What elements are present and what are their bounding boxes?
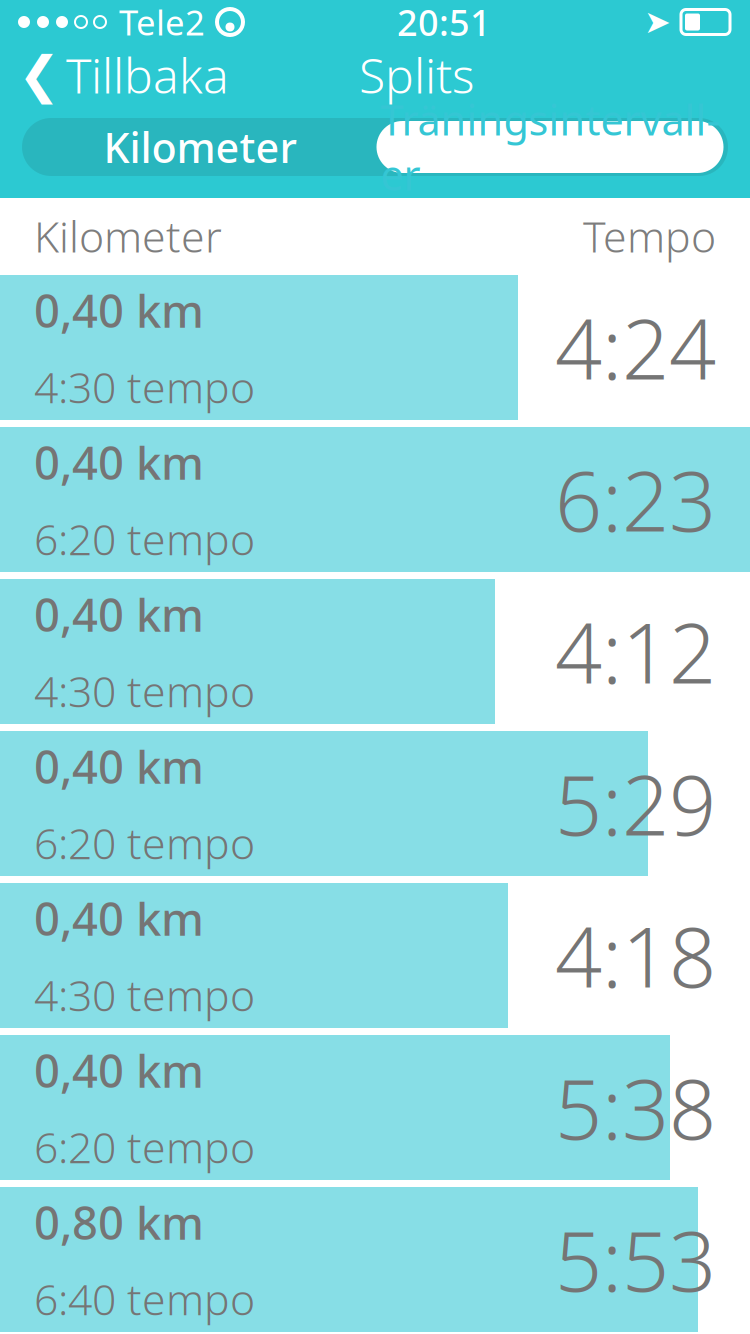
staticText: 20:51 [397, 0, 491, 46]
staticText: 0,40 km [34, 1040, 204, 1100]
staticText: 4:24 [555, 293, 716, 402]
staticText: 4:12 [555, 597, 716, 706]
button[interactable]: Träningsintervaller [376, 121, 726, 173]
staticText: 4:30 tempo [34, 358, 255, 415]
staticText: 6:40 tempo [34, 1270, 255, 1327]
staticText: 0,40 km [34, 888, 204, 948]
staticText: 6:20 tempo [34, 510, 255, 567]
staticText: 0,80 km [34, 1192, 204, 1252]
staticText: 5:53 [555, 1205, 716, 1314]
staticText: Tele2 [119, 0, 205, 45]
staticText: Tillbaka [66, 43, 229, 107]
staticText: Träningsintervaller [380, 92, 719, 202]
staticText: 6:20 tempo [34, 814, 255, 871]
staticText: Kilometer [34, 208, 222, 264]
staticText: Tempo [583, 208, 716, 264]
staticText: ➤ [644, 4, 671, 40]
staticText: 4:18 [555, 901, 716, 1010]
staticText: 5:29 [555, 749, 716, 858]
staticText: 6:23 [555, 445, 716, 554]
staticText: 0,40 km [34, 432, 204, 492]
staticText: Splits [359, 43, 475, 107]
staticText: 0,40 km [34, 584, 204, 644]
staticText: 6:20 tempo [34, 1118, 255, 1175]
staticText: 0,40 km [34, 280, 204, 340]
staticText: 0,40 km [34, 736, 204, 796]
staticText: 4:30 tempo [34, 966, 255, 1023]
staticText: 4:30 tempo [34, 662, 255, 719]
button[interactable]: Kilometer [23, 118, 376, 176]
staticText: 5:38 [555, 1053, 716, 1162]
staticText: Kilometer [103, 120, 296, 174]
button[interactable]: ❮ [0, 35, 229, 115]
staticText: ❮ [18, 46, 60, 104]
